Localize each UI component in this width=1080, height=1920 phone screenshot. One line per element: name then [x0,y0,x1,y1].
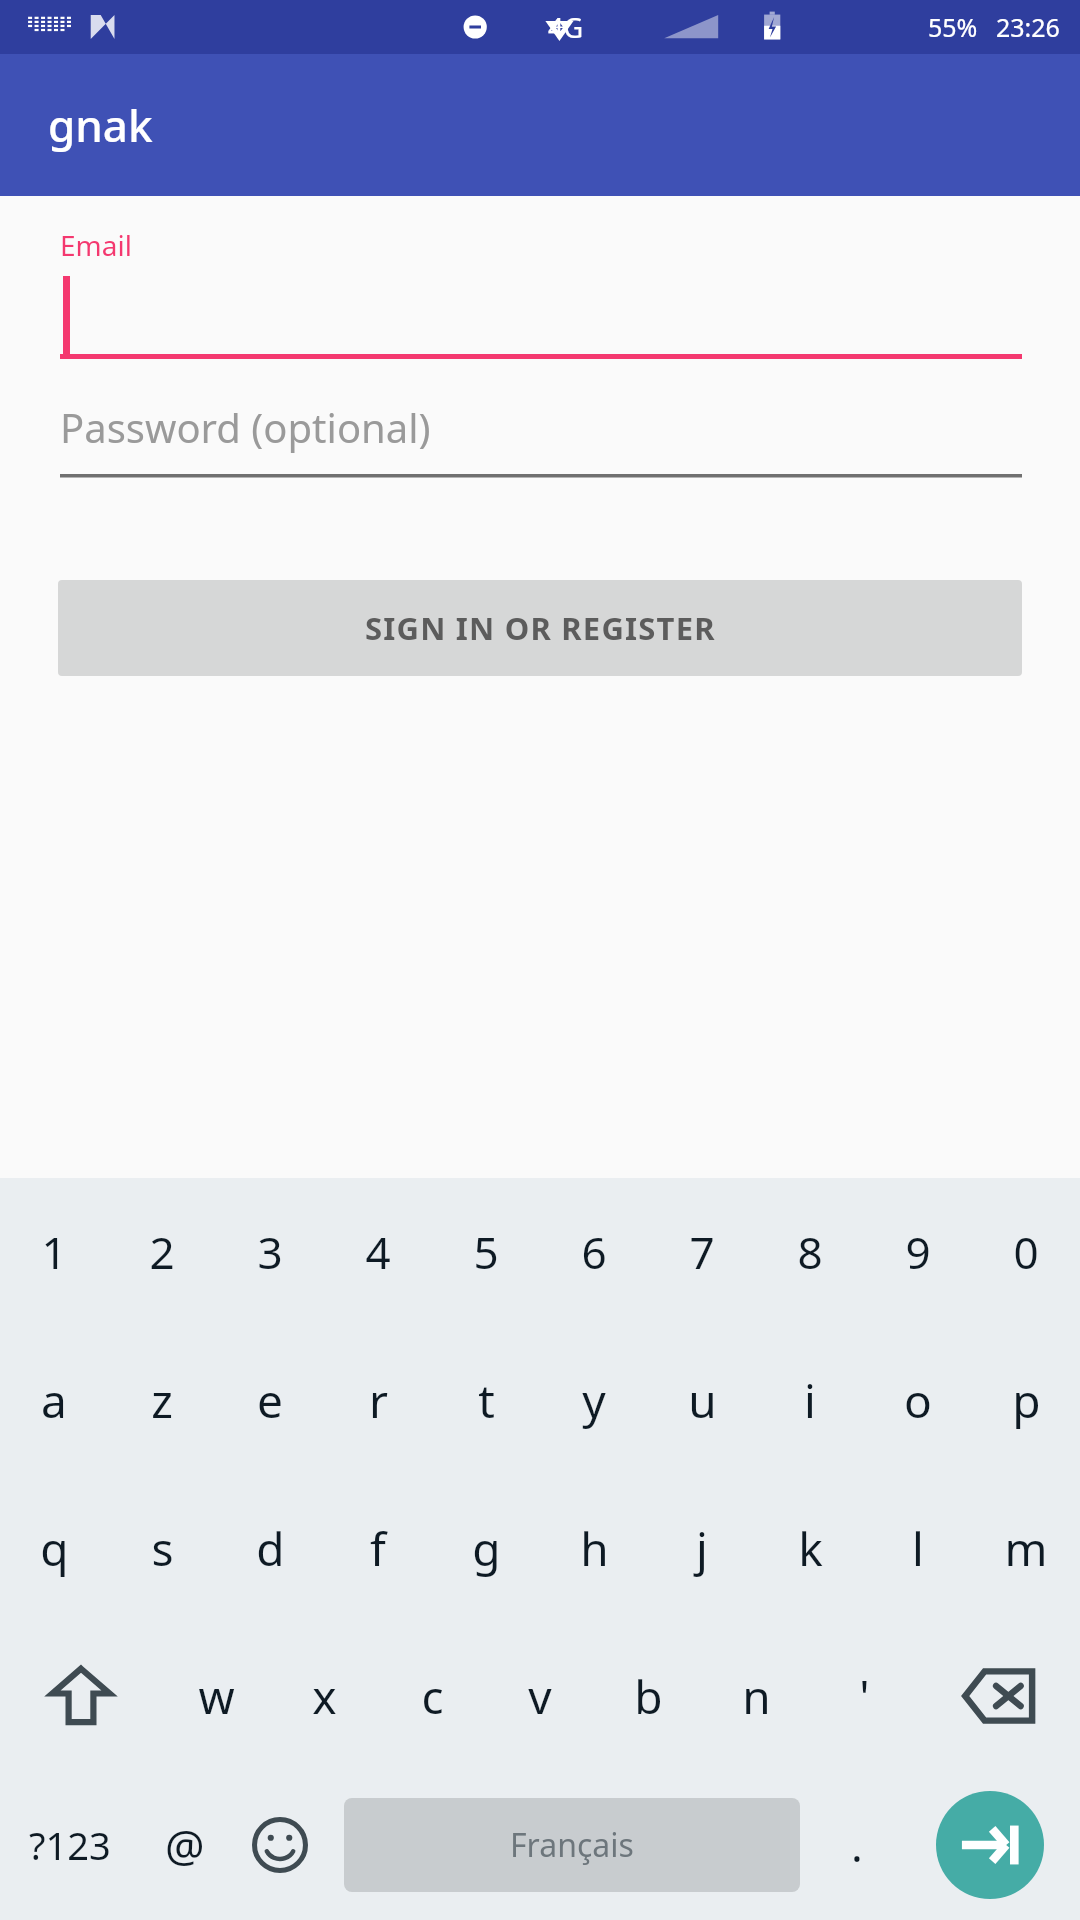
staticText: e [257,1369,283,1432]
button[interactable]: . [814,1770,900,1920]
button[interactable]: i [756,1326,864,1474]
button[interactable]: o [864,1326,972,1474]
button[interactable]: s [108,1474,216,1622]
staticText: a [41,1369,67,1432]
staticText: h [580,1517,609,1580]
button[interactable]: x [270,1622,378,1770]
staticText: 4 [365,1222,391,1282]
button[interactable]: g [432,1474,540,1622]
button[interactable]: n [702,1622,810,1770]
staticText: z [151,1369,173,1432]
button[interactable]: b [594,1622,702,1770]
button[interactable]: k [756,1474,864,1622]
button[interactable]: f [324,1474,432,1622]
staticText: Password (optional) [60,400,431,454]
staticText: 4G [548,9,584,46]
staticText: v [528,1665,552,1728]
button[interactable]: 4 [324,1178,432,1326]
button[interactable]: t [432,1326,540,1474]
button[interactable]: 8 [756,1178,864,1326]
button[interactable]: z [108,1326,216,1474]
button[interactable]: Password (optional) [60,378,1022,498]
button[interactable]: q [0,1474,108,1622]
staticText: ?123 [29,1819,111,1871]
staticText: Email [60,226,132,264]
button[interactable]: m [972,1474,1080,1622]
staticText: 8 [797,1222,823,1282]
button[interactable]: Shift [0,1622,162,1770]
button[interactable]: p [972,1326,1080,1474]
button[interactable]: 6 [540,1178,648,1326]
button[interactable]: Français [344,1798,800,1892]
button[interactable]: ?123 [0,1770,140,1920]
staticText: k [798,1517,823,1580]
staticText: g [472,1517,501,1580]
staticText: n [742,1665,771,1728]
staticText: 23:26 [996,10,1060,44]
staticText: o [904,1369,932,1432]
staticText: t [478,1369,495,1432]
button[interactable]: 5 [432,1178,540,1326]
button[interactable]: d [216,1474,324,1622]
staticText: c [421,1665,444,1728]
staticText: b [634,1665,663,1728]
button[interactable]: 9 [864,1178,972,1326]
staticText: 6 [581,1222,607,1282]
staticText: 7 [689,1222,715,1282]
button[interactable]: 1 [0,1178,108,1326]
button[interactable]: 7 [648,1178,756,1326]
button[interactable]: v [486,1622,594,1770]
button[interactable]: w [162,1622,270,1770]
staticText: 9 [905,1222,931,1282]
button[interactable]: 3 [216,1178,324,1326]
staticText: q [40,1517,69,1580]
staticText: w [198,1665,235,1728]
staticText: m [1004,1517,1048,1580]
button[interactable]: 2 [108,1178,216,1326]
button[interactable]: l [864,1474,972,1622]
staticText: f [370,1517,386,1580]
staticText: 1 [41,1222,67,1282]
button[interactable]: u [648,1326,756,1474]
button[interactable]: Email [60,198,1022,378]
staticText: @ [165,1815,205,1875]
button[interactable]: y [540,1326,648,1474]
staticText: r [369,1369,388,1432]
staticText: 2 [149,1222,175,1282]
staticText: l [912,1517,924,1580]
button[interactable]: SIGN IN OR REGISTER [58,580,1022,676]
staticText: . [851,1815,863,1875]
button[interactable]: ' [810,1622,918,1770]
staticText: Français [510,1823,634,1867]
staticText: 0 [1013,1222,1039,1282]
button[interactable]: Emoji [230,1770,330,1920]
button[interactable]: @ [140,1770,230,1920]
staticText: x [312,1665,337,1728]
staticText: SIGN IN OR REGISTER [365,607,716,649]
staticText: d [256,1517,285,1580]
staticText: y [582,1369,606,1432]
staticText: gnak [48,95,153,155]
staticText: s [151,1517,174,1580]
button[interactable]: c [378,1622,486,1770]
button[interactable]: r [324,1326,432,1474]
button[interactable]: a [0,1326,108,1474]
staticText: i [804,1369,816,1432]
button[interactable]: h [540,1474,648,1622]
staticText: p [1012,1369,1041,1432]
button[interactable]: e [216,1326,324,1474]
button[interactable]: Enter [900,1770,1080,1920]
button[interactable]: j [648,1474,756,1622]
staticText: 5 [473,1222,499,1282]
staticText: j [696,1517,708,1580]
button[interactable]: Backspace [918,1622,1080,1770]
button[interactable]: 0 [972,1178,1080,1326]
staticText: 3 [257,1222,283,1282]
staticText: u [688,1369,717,1432]
staticText: ' [859,1665,870,1728]
staticText: 55% [928,10,978,44]
